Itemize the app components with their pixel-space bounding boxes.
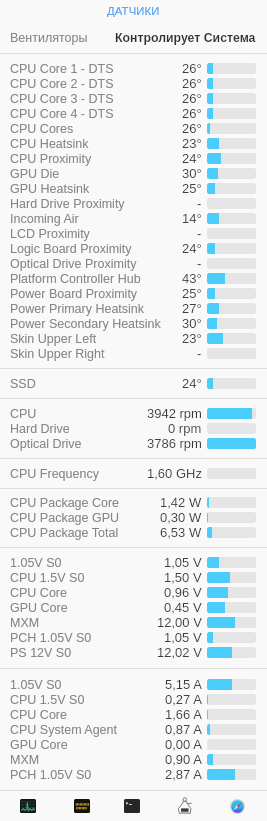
- staticText: Optical Drive: [10, 437, 82, 451]
- button[interactable]: CPU Core 2 - DTS: [0, 76, 267, 91]
- staticText: CPU Core 4 - DTS: [10, 107, 114, 121]
- staticText: 0,87 A: [165, 722, 202, 737]
- staticText: 26°: [182, 106, 202, 121]
- staticText: 24°: [182, 151, 202, 166]
- button[interactable]: GPU Core: [0, 737, 267, 752]
- button[interactable]: Optical Drive: [0, 436, 267, 451]
- staticText: CPU Core: [10, 586, 67, 600]
- button[interactable]: PCH 1.05V S0: [0, 630, 267, 645]
- staticText: 0,27 A: [165, 692, 202, 707]
- button[interactable]: Skin Upper Left: [0, 331, 267, 346]
- staticText: 0,30 W: [160, 510, 202, 525]
- button[interactable]: 1.05V S0: [0, 555, 267, 570]
- button[interactable]: GPU Die: [0, 166, 267, 181]
- button[interactable]: Terminal: [119, 793, 145, 819]
- staticText: 2,87 A: [165, 767, 202, 782]
- button[interactable]: PCH 1.05V S0: [0, 767, 267, 782]
- button[interactable]: Logic Board Proximity: [0, 241, 267, 256]
- staticText: 6,53 W: [160, 525, 202, 540]
- staticText: CPU System Agent: [10, 723, 117, 737]
- button[interactable]: Power Primary Heatsink: [0, 301, 267, 316]
- button[interactable]: ДАТЧИКИ: [107, 5, 160, 18]
- staticText: GPU Core: [10, 601, 68, 615]
- button[interactable]: Skin Upper Right: [0, 346, 267, 361]
- button[interactable]: Power Secondary Heatsink: [0, 316, 267, 331]
- staticText: Logic Board Proximity: [10, 242, 132, 256]
- staticText: 1,42 W: [160, 495, 202, 510]
- button[interactable]: GPU Core: [0, 600, 267, 615]
- staticText: 1,60 GHz: [147, 466, 202, 481]
- staticText: MXM: [10, 753, 40, 767]
- staticText: CPU 1.5V S0: [10, 693, 85, 707]
- staticText: CPU Package Total: [10, 526, 119, 540]
- button[interactable]: CPU Cores: [0, 121, 267, 136]
- button[interactable]: iStat Menus: [15, 793, 41, 819]
- staticText: -: [197, 256, 202, 271]
- button[interactable]: Hard Drive: [0, 421, 267, 436]
- button[interactable]: Контролирует Система: [115, 31, 256, 45]
- staticText: CPU Core 2 - DTS: [10, 77, 114, 91]
- staticText: 25°: [182, 181, 202, 196]
- staticText: Platform Controller Hub: [10, 272, 141, 286]
- staticText: CPU Package Core: [10, 496, 120, 510]
- staticText: 14°: [182, 211, 202, 226]
- button[interactable]: MXM: [0, 615, 267, 630]
- button[interactable]: CPU 1.5V S0: [0, 692, 267, 707]
- staticText: 1,66 A: [165, 707, 202, 722]
- button[interactable]: CPU Package Core: [0, 495, 267, 510]
- staticText: -: [197, 196, 202, 211]
- staticText: 26°: [182, 121, 202, 136]
- staticText: MXM: [10, 616, 40, 630]
- button[interactable]: Incoming Air: [0, 211, 267, 226]
- staticText: 1,05 V: [164, 555, 202, 570]
- staticText: CPU Package GPU: [10, 511, 120, 525]
- button[interactable]: MXM: [0, 752, 267, 767]
- button[interactable]: CPU Core 1 - DTS: [0, 61, 267, 76]
- button[interactable]: CPU Core: [0, 707, 267, 722]
- button[interactable]: Hard Drive Proximity: [0, 196, 267, 211]
- staticText: 30°: [182, 316, 202, 331]
- button[interactable]: CPU Frequency: [0, 466, 267, 481]
- staticText: Hard Drive: [10, 422, 70, 436]
- staticText: LCD Proximity: [10, 227, 90, 241]
- staticText: CPU Core: [10, 708, 67, 722]
- button[interactable]: CPU System Agent: [0, 722, 267, 737]
- staticText: CPU Cores: [10, 122, 74, 136]
- button[interactable]: SSD: [0, 376, 267, 391]
- staticText: 1.05V S0: [10, 678, 62, 692]
- button[interactable]: Espresso: [171, 793, 197, 819]
- staticText: Incoming Air: [10, 212, 79, 226]
- staticText: GPU Die: [10, 167, 60, 181]
- button[interactable]: 1.05V S0: [0, 677, 267, 692]
- button[interactable]: CPU Core: [0, 585, 267, 600]
- button[interactable]: Вентиляторы: [10, 31, 88, 45]
- staticText: 23°: [182, 331, 202, 346]
- button[interactable]: CPU Core 4 - DTS: [0, 106, 267, 121]
- button[interactable]: CPU Heatsink: [0, 136, 267, 151]
- staticText: 3942 rpm: [147, 406, 202, 421]
- button[interactable]: CPU: [0, 406, 267, 421]
- button[interactable]: CPU 1.5V S0: [0, 570, 267, 585]
- button[interactable]: PS 12V S0: [0, 645, 267, 660]
- button[interactable]: Power Board Proximity: [0, 286, 267, 301]
- button[interactable]: CPU Proximity: [0, 151, 267, 166]
- button[interactable]: Platform Controller Hub: [0, 271, 267, 286]
- staticText: 3786 rpm: [147, 436, 202, 451]
- button[interactable]: CPU Package GPU: [0, 510, 267, 525]
- staticText: GPU Core: [10, 738, 68, 752]
- button[interactable]: CPU Package Total: [0, 525, 267, 540]
- button[interactable]: CPU Core 3 - DTS: [0, 91, 267, 106]
- button[interactable]: Optical Drive Proximity: [0, 256, 267, 271]
- staticText: SSD: [10, 377, 36, 391]
- button[interactable]: LCD Proximity: [0, 226, 267, 241]
- staticText: PS 12V S0: [10, 646, 72, 660]
- staticText: 26°: [182, 91, 202, 106]
- button[interactable]: Safari: [224, 793, 250, 819]
- staticText: 1,50 V: [164, 570, 202, 585]
- button[interactable]: Warner Media: [69, 793, 95, 819]
- button[interactable]: GPU Heatsink: [0, 181, 267, 196]
- staticText: CPU 1.5V S0: [10, 571, 85, 585]
- staticText: PCH 1.05V S0: [10, 631, 92, 645]
- staticText: -: [197, 346, 202, 361]
- staticText: Hard Drive Proximity: [10, 197, 125, 211]
